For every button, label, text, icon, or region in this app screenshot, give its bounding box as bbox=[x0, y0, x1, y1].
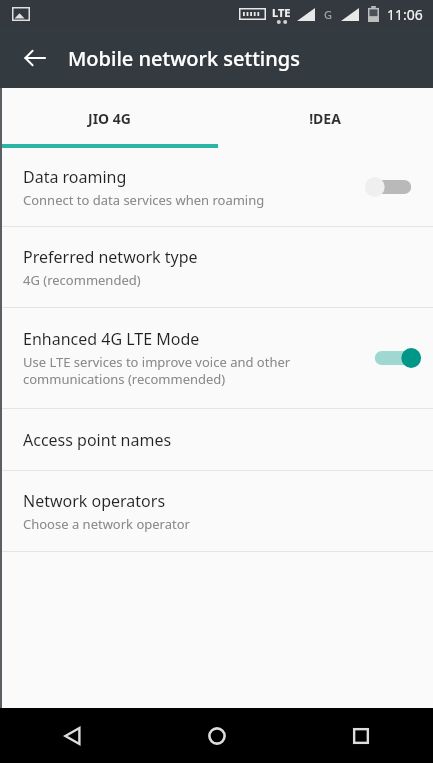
staticText: Mobile network settings bbox=[68, 45, 300, 72]
button[interactable]: Preferred network type bbox=[2, 227, 433, 307]
staticText: Use LTE services to improve voice and ot… bbox=[23, 353, 291, 388]
staticText: 11:06 bbox=[387, 5, 423, 24]
staticText: Connect to data services when roaming bbox=[23, 191, 265, 209]
staticText: Preferred network type bbox=[23, 246, 198, 268]
staticText: Choose a network operator bbox=[23, 515, 190, 533]
staticText: Enhanced 4G LTE Mode bbox=[23, 328, 200, 350]
button[interactable]: Access point names bbox=[2, 409, 433, 470]
staticText: !DEA bbox=[309, 109, 341, 128]
button[interactable]: Back bbox=[0, 708, 145, 763]
button[interactable]: Data roaming bbox=[2, 148, 433, 226]
staticText: Data roaming bbox=[23, 166, 127, 188]
button[interactable]: Home bbox=[145, 708, 289, 763]
staticText: JIO 4G bbox=[88, 109, 131, 128]
staticText: LTE bbox=[272, 5, 291, 20]
button[interactable]: Back bbox=[13, 36, 57, 80]
button[interactable]: Recents bbox=[289, 708, 433, 763]
button[interactable]: !DEA bbox=[217, 88, 433, 148]
button[interactable]: JIO 4G bbox=[2, 88, 217, 148]
staticText: Access point names bbox=[23, 429, 172, 451]
staticText: G bbox=[324, 7, 332, 22]
button[interactable]: Network operators bbox=[2, 471, 433, 551]
button[interactable]: Enhanced 4G LTE Mode bbox=[2, 308, 433, 408]
staticText: Network operators bbox=[23, 490, 166, 512]
staticText: 4G (recommended) bbox=[23, 271, 141, 289]
